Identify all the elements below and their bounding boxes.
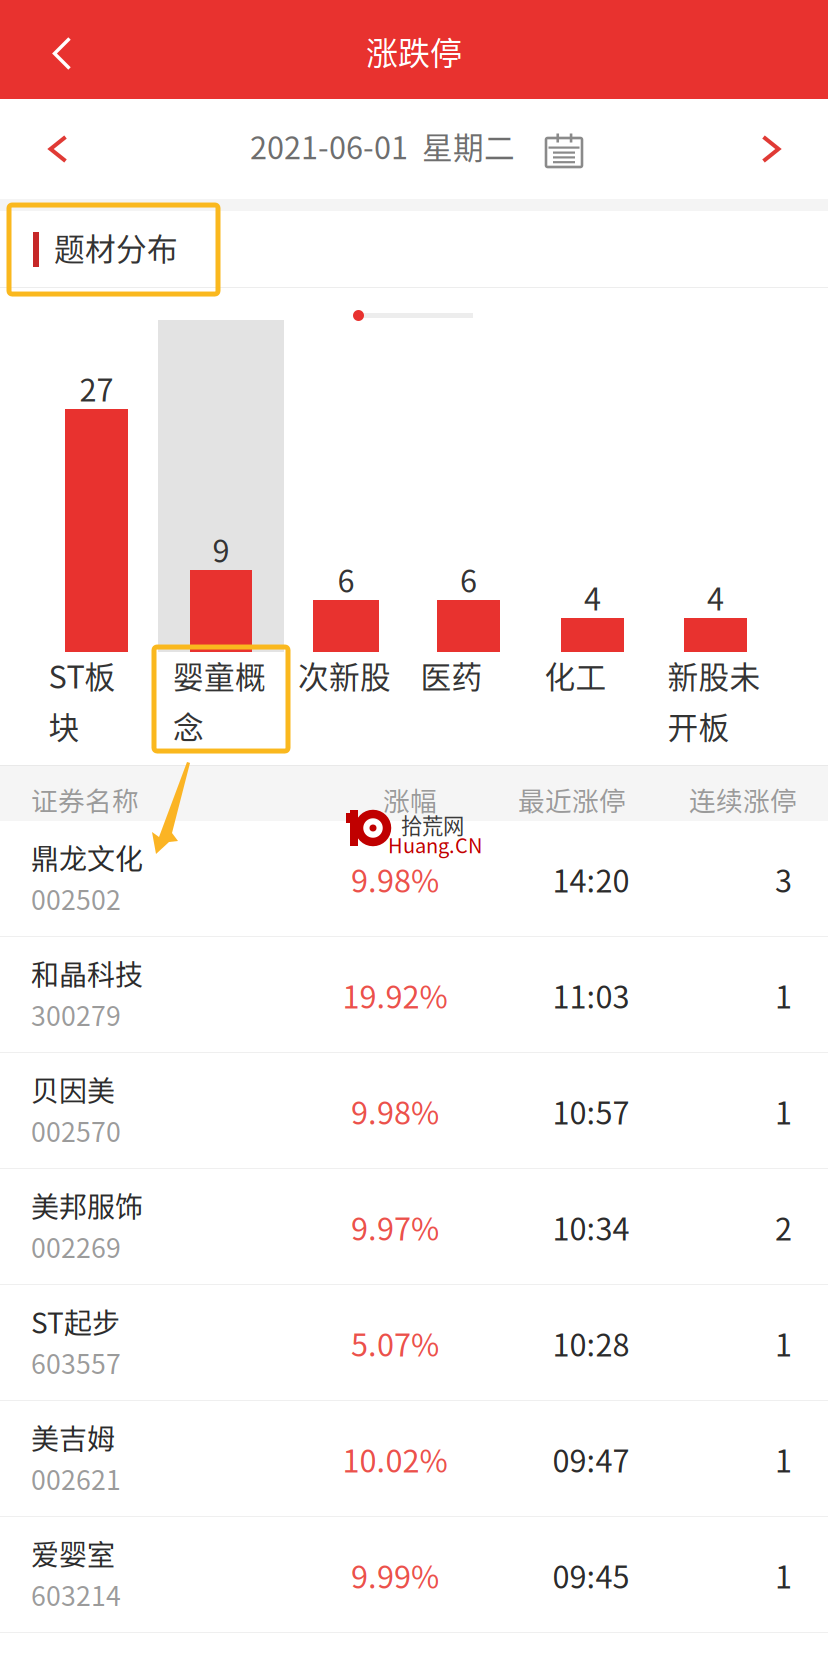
staticText: 11:03 <box>552 973 629 1017</box>
staticText: 5.07% <box>351 1321 439 1365</box>
staticText: 9.98% <box>351 857 439 901</box>
staticText: 美邦服饰 <box>31 1185 143 1225</box>
staticText: 新股未 <box>667 653 760 697</box>
button[interactable]: Back <box>14 4 110 103</box>
staticText: 3 <box>775 857 792 901</box>
staticText: 4 <box>584 575 601 619</box>
staticText: 9.98% <box>351 1089 439 1133</box>
staticText: 1 <box>775 1553 792 1597</box>
staticText: 证券名称 <box>31 780 139 819</box>
staticText: 9.97% <box>351 1205 439 1249</box>
staticText: 002621 <box>31 1459 121 1498</box>
staticText: 1 <box>775 1437 792 1481</box>
staticText: 002570 <box>31 1111 121 1150</box>
staticText: 6 <box>337 557 354 601</box>
staticText: 连续涨停 <box>689 780 797 819</box>
staticText: 爱婴室 <box>31 1533 115 1573</box>
staticText: 化工 <box>544 653 606 697</box>
button[interactable]: 美邦服饰 <box>0 1169 828 1285</box>
staticText: 27 <box>79 366 113 410</box>
staticText: 1 <box>775 1089 792 1133</box>
staticText: 10.02% <box>342 1437 447 1481</box>
staticText: 6 <box>460 557 477 601</box>
staticText: ST板 <box>48 653 115 697</box>
staticText: 鼎龙文化 <box>31 837 143 877</box>
staticText: 09:47 <box>552 1437 629 1481</box>
button[interactable]: 美吉姆 <box>0 1401 828 1517</box>
staticText: 开板 <box>667 703 729 748</box>
button[interactable]: 贝因美 <box>0 1053 828 1169</box>
staticText: ST起步 <box>31 1301 120 1341</box>
staticText: 1 <box>775 973 792 1017</box>
staticText: 美吉姆 <box>31 1417 115 1457</box>
staticText: 09:45 <box>552 1553 629 1597</box>
staticText: 拾荒网 <box>401 809 464 840</box>
staticText: 603557 <box>31 1343 121 1382</box>
staticText: 2 <box>775 1205 792 1249</box>
staticText: 次新股 <box>298 653 391 697</box>
staticText: 医药 <box>420 653 482 697</box>
staticText: 4 <box>707 575 724 619</box>
button[interactable]: Previous day <box>3 99 113 199</box>
button[interactable]: 和晶科技 <box>0 937 828 1053</box>
staticText: 10:57 <box>552 1089 629 1133</box>
staticText: 念 <box>173 703 204 748</box>
staticText: Huang.CN <box>388 830 482 859</box>
staticText: 9 <box>212 527 229 571</box>
staticText: 和晶科技 <box>31 953 143 993</box>
staticText: 002269 <box>31 1227 121 1266</box>
staticText: 10:28 <box>552 1321 629 1365</box>
staticText: 14:20 <box>552 857 629 901</box>
staticText: 题材分布 <box>54 225 178 269</box>
staticText: 最近涨停 <box>518 780 626 819</box>
staticText: 涨跌停 <box>366 28 462 74</box>
staticText: 2021-06-01 星期二 <box>250 124 515 168</box>
button[interactable]: ST起步 <box>0 1285 828 1401</box>
staticText: 婴童概 <box>173 653 266 697</box>
staticText: 涨幅 <box>383 780 437 819</box>
button[interactable]: 鼎龙文化 <box>0 821 828 937</box>
staticText: 9.99% <box>351 1553 439 1597</box>
staticText: 块 <box>48 703 79 748</box>
staticText: 10:34 <box>552 1205 629 1249</box>
staticText: 603214 <box>31 1575 121 1614</box>
staticText: 19.92% <box>342 973 447 1017</box>
button[interactable]: 2021-06-01 星期二 <box>250 111 630 181</box>
staticText: 300279 <box>31 995 121 1034</box>
staticText: 002502 <box>31 879 121 918</box>
staticText: 贝因美 <box>31 1069 115 1109</box>
staticText: 1 <box>775 1321 792 1365</box>
button[interactable]: Next day <box>716 99 826 199</box>
button[interactable]: 爱婴室 <box>0 1517 828 1633</box>
